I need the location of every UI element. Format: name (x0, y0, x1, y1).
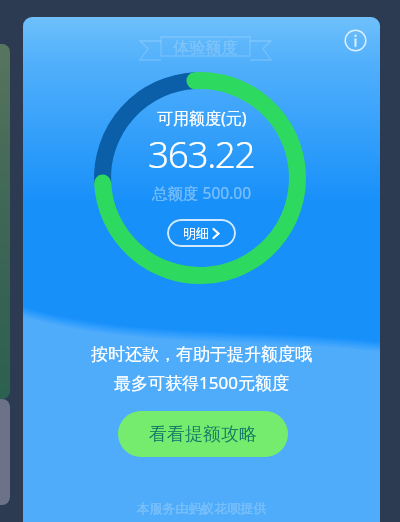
staticText: 看看提额攻略 (149, 423, 257, 446)
staticText: 体验额度 (161, 38, 250, 57)
staticText: 最多可获得1500元额度 (114, 371, 289, 394)
button[interactable]: 明细 (167, 219, 236, 247)
staticText: 总额度 500.00 (152, 182, 252, 203)
staticText: 可用额度(元) (157, 107, 247, 129)
button[interactable]: Information (337, 22, 373, 58)
staticText: 明细 (183, 225, 209, 241)
staticText: 363.22 (148, 128, 255, 178)
button[interactable]: 看看提额攻略 (118, 411, 288, 457)
staticText: 本服务由蚂蚁花呗提供 (23, 500, 380, 516)
staticText: 按时还款，有助于提升额度哦 (91, 344, 312, 365)
